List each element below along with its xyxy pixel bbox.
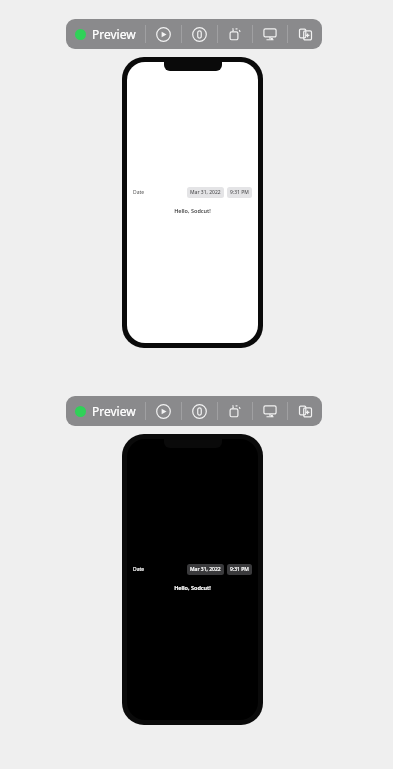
button[interactable]: Date (133, 187, 252, 198)
staticText: Hello, Sodcut! (133, 207, 252, 214)
button[interactable]: Mar 31, 2022 (187, 187, 224, 198)
staticText: Mar 31, 2022 (190, 566, 221, 573)
staticText: 9:31 PM (230, 189, 249, 196)
button[interactable]: 9:31 PM (227, 187, 252, 198)
button[interactable]: Mar 31, 2022 (187, 564, 224, 575)
button[interactable]: Duplicate preview (288, 396, 322, 426)
staticText: Mar 31, 2022 (190, 189, 221, 196)
button[interactable]: Inspect / 3D (218, 396, 252, 426)
staticText: Preview (92, 403, 136, 419)
button[interactable]: Preview (75, 19, 136, 49)
staticText: Date (133, 566, 145, 573)
staticText: Preview (92, 26, 136, 42)
button[interactable]: Select (182, 396, 217, 426)
button[interactable]: Date (133, 564, 252, 575)
staticText: 9:31 PM (230, 566, 249, 573)
button[interactable]: Live preview (146, 19, 181, 49)
staticText: Hello, Sodcut! (133, 584, 252, 591)
staticText: Date (133, 189, 145, 196)
button[interactable]: Select (182, 19, 217, 49)
button[interactable]: 9:31 PM (227, 564, 252, 575)
button[interactable]: Run on device (253, 396, 287, 426)
button[interactable]: Inspect / 3D (218, 19, 252, 49)
button[interactable]: Run on device (253, 19, 287, 49)
button[interactable]: Duplicate preview (288, 19, 322, 49)
button[interactable]: Preview (75, 396, 136, 426)
button[interactable]: Live preview (146, 396, 181, 426)
